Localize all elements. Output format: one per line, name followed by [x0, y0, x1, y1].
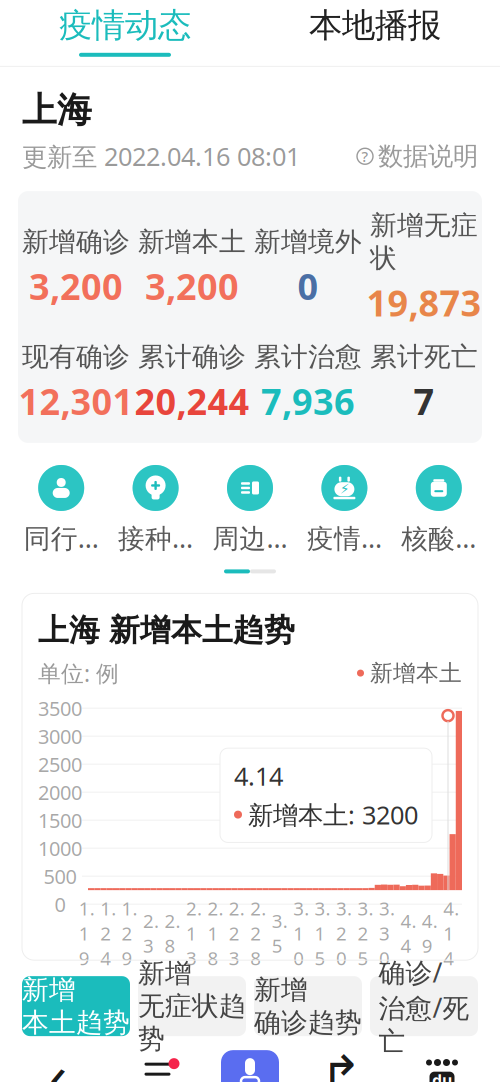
staticText: 3.20	[336, 896, 352, 970]
staticText: ‹	[49, 1035, 67, 1082]
staticText: 3500	[38, 695, 82, 721]
staticText: 2.28	[250, 896, 266, 970]
staticText: 累计确诊	[138, 340, 246, 373]
staticText: 新增本土: 3200	[248, 798, 418, 831]
staticText: 数据说明	[378, 141, 478, 172]
staticText: 4.14	[443, 896, 459, 970]
staticText: 2.8	[164, 908, 180, 958]
staticText: 确诊/ 治愈/死亡	[378, 954, 469, 1058]
staticText: 同行...	[24, 520, 99, 555]
staticText: 0	[297, 262, 318, 310]
staticText: 4.9	[422, 908, 438, 958]
staticText: 3.5	[272, 908, 288, 958]
staticText: 疫情动态	[59, 5, 191, 46]
staticText: 单位: 例	[38, 658, 119, 688]
button[interactable]: Baidu home	[402, 1043, 482, 1082]
staticText: 20,244	[134, 377, 249, 425]
button[interactable]: 确诊/ 治愈/死亡	[370, 976, 478, 1036]
staticText: ↱	[319, 1045, 361, 1082]
staticText: 周边...	[212, 520, 287, 555]
staticText: 3,200	[29, 262, 123, 310]
staticText: 3000	[38, 723, 82, 749]
staticText: 2.23	[229, 896, 245, 970]
staticText: 7	[413, 377, 434, 425]
staticText: 500	[43, 863, 76, 889]
staticText: 现有确诊	[22, 340, 130, 373]
staticText: ?	[361, 146, 368, 166]
staticText: 2.18	[207, 896, 223, 970]
button[interactable]: Menu	[119, 1043, 199, 1082]
button[interactable]: 核酸...	[392, 465, 486, 555]
button[interactable]: 新增 确诊趋势	[254, 976, 362, 1036]
staticText: 上海 新增本土趋势	[38, 611, 295, 649]
staticText: 4.4	[400, 908, 416, 958]
staticText: 疫情...	[307, 520, 382, 555]
button[interactable]: Share	[300, 1043, 380, 1082]
staticText: 19,873	[366, 279, 481, 326]
staticText: 3.10	[293, 896, 309, 970]
button[interactable]: Back	[18, 1043, 98, 1082]
staticText: 新增境外	[254, 225, 362, 258]
staticText: 3.30	[379, 896, 395, 970]
button[interactable]: 疫情动态	[0, 0, 250, 62]
button[interactable]: ?	[357, 141, 478, 172]
button[interactable]: 新增 本土趋势	[22, 976, 130, 1036]
staticText: 3.25	[357, 896, 373, 970]
staticText: 2500	[38, 751, 82, 777]
button[interactable]: 同行...	[14, 465, 108, 555]
staticText: 新增 无症状趋势	[138, 957, 246, 1055]
button[interactable]: 新增 无症状趋势	[138, 976, 246, 1036]
staticText: 更新至 2022.04.16 08:01	[22, 139, 300, 173]
staticText: 本地播报	[309, 5, 441, 46]
staticText: 累计死亡	[370, 340, 478, 373]
staticText: 累计治愈	[254, 340, 362, 373]
staticText: 1000	[38, 835, 82, 861]
staticText: du	[432, 1069, 452, 1082]
staticText: 接种...	[118, 520, 193, 555]
staticText: 7,936	[261, 377, 355, 425]
button[interactable]: 本地播报	[250, 0, 500, 62]
staticText: 新增 本土趋势	[22, 973, 130, 1039]
staticText: 1.24	[100, 896, 116, 970]
staticText: 新增 确诊趋势	[254, 973, 362, 1039]
staticText: 2.3	[143, 908, 159, 958]
staticText: 4.14	[234, 759, 283, 793]
staticText: 新增本土	[138, 225, 246, 258]
staticText: 3.15	[315, 896, 331, 970]
staticText: 新增确诊	[22, 225, 130, 258]
staticText: ⚡︎	[340, 482, 349, 497]
staticText: 上海	[22, 89, 92, 131]
staticText: 核酸...	[401, 520, 476, 555]
button[interactable]: ⚡︎	[297, 465, 392, 555]
staticText: 2.13	[186, 896, 202, 970]
staticText: 新增本土	[370, 659, 462, 687]
staticText: 新增无症状	[370, 209, 478, 275]
staticText: 1.19	[79, 896, 95, 970]
staticText: 2000	[38, 779, 82, 805]
staticText: 12,301	[18, 377, 133, 425]
staticText: 3,200	[145, 262, 239, 310]
staticText: 0	[54, 891, 65, 917]
staticText: 1.29	[122, 896, 138, 970]
button[interactable]: 接种...	[108, 465, 203, 555]
button[interactable]: Voice search	[221, 1050, 279, 1082]
staticText: 1500	[38, 807, 82, 833]
button[interactable]: 周边...	[203, 465, 297, 555]
